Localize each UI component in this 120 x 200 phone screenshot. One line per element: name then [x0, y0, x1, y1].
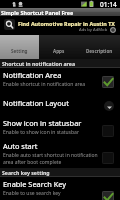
staticText: Shortcut in notification area — [2, 60, 76, 67]
button[interactable]: Notification Area — [0, 68, 120, 92]
button[interactable]: Setting — [0, 35, 39, 59]
staticText: Enable to show icon in statusbar — [3, 129, 79, 136]
button[interactable]: Description — [79, 35, 120, 59]
staticText: Simple Shortcut Panel Free — [1, 9, 74, 16]
staticText: Enable auto start shortcut in notificati… — [3, 152, 99, 165]
staticText: Show icon in statusbar — [3, 118, 82, 128]
button[interactable]: Choose notification layout — [104, 101, 114, 111]
staticText: Enable shortcut in notification area — [3, 81, 86, 88]
staticText: Ads by AdMob — [79, 27, 108, 33]
button[interactable]: Disabled — [102, 152, 114, 164]
staticText: Setting — [11, 48, 28, 54]
staticText: Notification Layout — [3, 98, 69, 108]
button[interactable]: Notification Layout — [0, 92, 120, 115]
staticText: Notification Area — [3, 70, 62, 80]
button[interactable]: Apps — [39, 35, 79, 59]
button[interactable]: Show icon in statusbar — [0, 115, 120, 140]
button[interactable]: Enabled — [102, 76, 114, 88]
staticText: Find Automotive Repair in Austin TX — [18, 20, 115, 27]
button[interactable]: Auto start — [0, 140, 120, 168]
staticText: Enable Search Key — [3, 179, 67, 189]
staticText: 01:14 — [100, 0, 117, 8]
staticText: Search key setting — [2, 169, 50, 176]
staticText: Enable to use search key — [3, 190, 61, 197]
button[interactable]: Advertisement — [0, 16, 120, 35]
button[interactable]: Enabled — [102, 191, 114, 200]
staticText: Apps — [53, 48, 65, 54]
button[interactable]: Enable Search Key — [0, 177, 120, 200]
staticText: Description — [86, 48, 113, 54]
staticText: Auto start — [3, 141, 38, 151]
button[interactable]: Disabled — [102, 125, 114, 137]
